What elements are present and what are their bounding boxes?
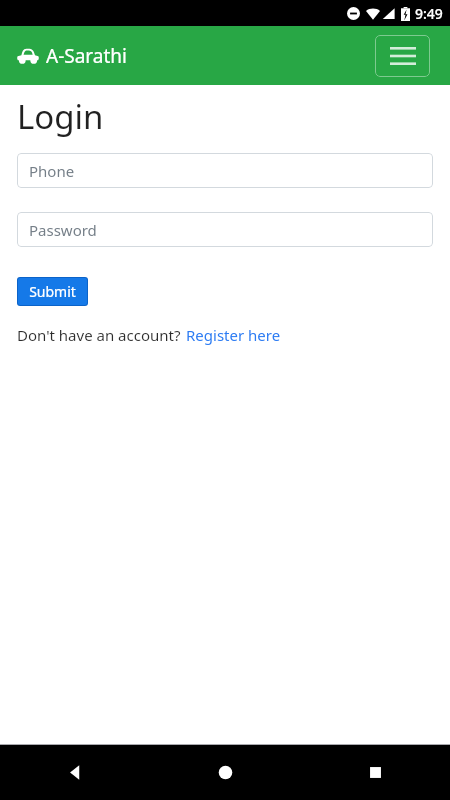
- button[interactable]: Home: [150, 745, 300, 800]
- button[interactable]: Open navigation menu: [375, 35, 430, 77]
- button[interactable]: Register here: [186, 325, 281, 345]
- staticText: Don't have an account?: [17, 325, 181, 345]
- staticText: Login: [17, 94, 104, 139]
- staticText: Submit: [29, 282, 76, 301]
- button[interactable]: A-Sarathi: [17, 43, 127, 69]
- staticText: A-Sarathi: [46, 43, 127, 69]
- button[interactable]: Password: [17, 212, 433, 247]
- staticText: Phone: [29, 161, 75, 181]
- button[interactable]: Phone: [17, 153, 433, 188]
- staticText: 9:49: [415, 4, 443, 23]
- button[interactable]: Recent apps: [300, 745, 450, 800]
- button[interactable]: Submit: [18, 278, 87, 305]
- button[interactable]: Back: [0, 745, 150, 800]
- staticText: Register here: [186, 325, 281, 345]
- staticText: Password: [29, 220, 97, 240]
